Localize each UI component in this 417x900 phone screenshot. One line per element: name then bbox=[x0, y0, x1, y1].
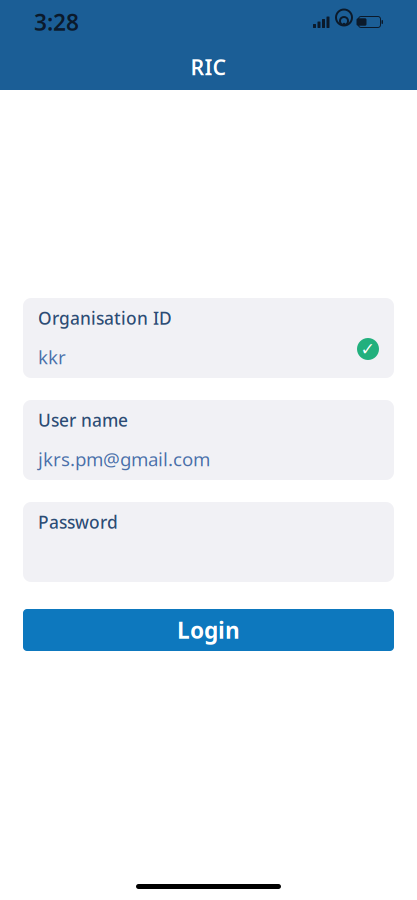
button[interactable]: Password bbox=[23, 502, 394, 582]
button[interactable]: Login bbox=[23, 609, 394, 651]
staticText: Login bbox=[177, 615, 240, 645]
button[interactable]: User name bbox=[23, 400, 394, 480]
staticText: kkr bbox=[38, 345, 66, 369]
staticText: RIC bbox=[190, 53, 226, 81]
staticText: Password bbox=[38, 511, 118, 534]
staticText: User name bbox=[38, 409, 128, 432]
button[interactable]: Organisation ID bbox=[23, 298, 394, 378]
staticText: 3:28 bbox=[34, 7, 79, 37]
staticText: jkrs.pm@gmail.com bbox=[38, 447, 210, 471]
staticText: ✓ bbox=[360, 339, 375, 359]
staticText: Organisation ID bbox=[38, 307, 172, 330]
